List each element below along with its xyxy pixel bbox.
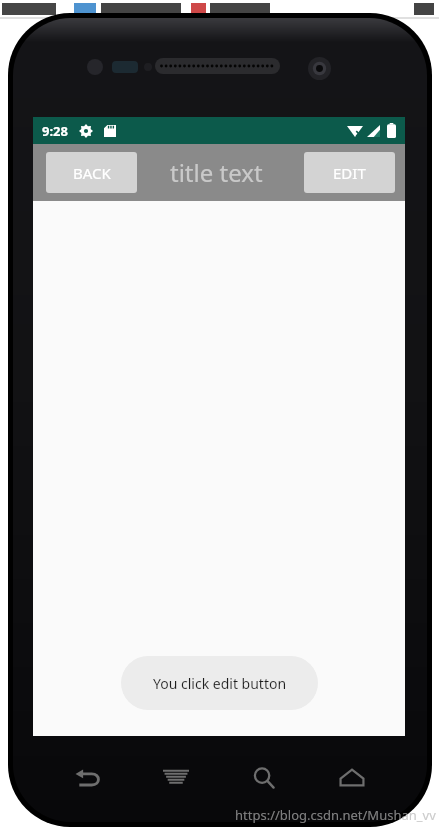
button[interactable]: Back xyxy=(44,752,132,804)
staticText: 9:28 xyxy=(42,122,68,140)
button[interactable]: Home xyxy=(308,752,396,804)
button[interactable]: EDIT xyxy=(304,152,395,193)
button[interactable]: BACK xyxy=(46,152,137,193)
staticText: title text xyxy=(170,156,263,189)
staticText: EDIT xyxy=(333,163,366,183)
staticText: You click edit button xyxy=(153,674,287,693)
staticText: https://blog.csdn.net/Mushan_vv xyxy=(235,806,436,824)
button[interactable]: Search xyxy=(220,752,308,804)
button[interactable]: Menu xyxy=(132,752,220,804)
staticText: BACK xyxy=(73,163,111,183)
